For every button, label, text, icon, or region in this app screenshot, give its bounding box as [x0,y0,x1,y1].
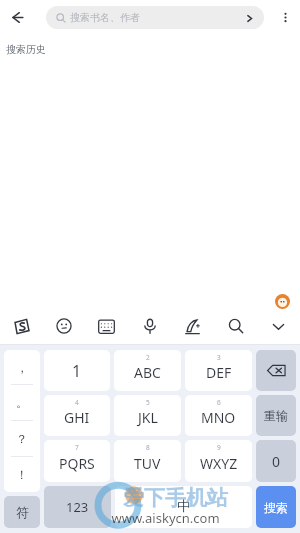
button[interactable]: Keyboard layout [85,312,128,340]
staticText: WXYZ [200,454,238,473]
button[interactable]: Account [275,294,290,309]
button[interactable]: 1 [44,350,110,391]
staticText: www.aiskycn.com [111,509,220,527]
staticText: ？ [16,431,28,446]
button[interactable]: Search [238,7,260,29]
button[interactable]: 符 [4,496,40,528]
staticText: PQRS [59,454,95,473]
staticText: 2 [146,353,150,362]
button[interactable]: Voice input [128,312,171,340]
button[interactable]: 123 [44,486,111,528]
button[interactable]: More options [270,2,300,32]
staticText: 搜索历史 [6,43,46,56]
staticText: 。 [16,395,28,410]
staticText: 123 [66,498,89,516]
button[interactable]: Delete [256,350,296,391]
button[interactable]: Collapse keyboard [257,312,300,340]
staticText: 搜索 [264,500,288,515]
button[interactable]: Search [214,312,257,340]
staticText: 4 [75,398,79,407]
button[interactable]: 8 [114,440,181,482]
staticText: MNO [201,408,236,427]
staticText: 5 [146,398,150,407]
staticText: 0 [272,452,281,471]
button[interactable]: 5 [114,395,181,436]
button[interactable]: Emoji [42,312,85,340]
button[interactable]: 4 [44,395,110,436]
staticText: GHI [64,408,90,427]
staticText: 搜索书名、作者 [70,11,140,24]
staticText: ， [16,360,28,375]
button[interactable]: Handwriting [171,312,214,340]
staticText: ！ [16,467,28,482]
button[interactable]: 搜索书名、作者 [46,6,264,29]
staticText: 重输 [264,408,288,423]
staticText: 3 [217,353,221,362]
staticText: 8 [146,443,150,452]
button[interactable]: 重输 [256,395,296,436]
button[interactable]: ！ [4,457,40,492]
button[interactable]: ？ [4,421,40,456]
staticText: DEF [206,363,232,382]
staticText: 中 [177,498,191,516]
button[interactable]: Sogou [0,312,42,340]
staticText: JKL [138,408,158,427]
staticText: TUV [134,454,161,473]
button[interactable]: 2 [114,350,181,391]
button[interactable]: 9 [185,440,252,482]
button[interactable]: 3 [185,350,252,391]
staticText: 爱下手机站 [123,485,228,511]
button[interactable]: Search [256,486,296,528]
button[interactable]: ， [4,350,40,384]
staticText: 7 [75,443,79,452]
staticText: 6 [217,398,221,407]
button[interactable]: 7 [44,440,110,482]
button[interactable]: 。 [4,385,40,420]
button[interactable]: 0 [256,440,296,482]
button[interactable]: 中 [115,486,252,528]
staticText: 符 [16,504,29,520]
staticText: 1 [72,360,82,382]
staticText: ABC [134,363,161,382]
staticText: 9 [217,443,221,452]
button[interactable]: Back [0,0,34,34]
button[interactable]: 6 [185,395,252,436]
